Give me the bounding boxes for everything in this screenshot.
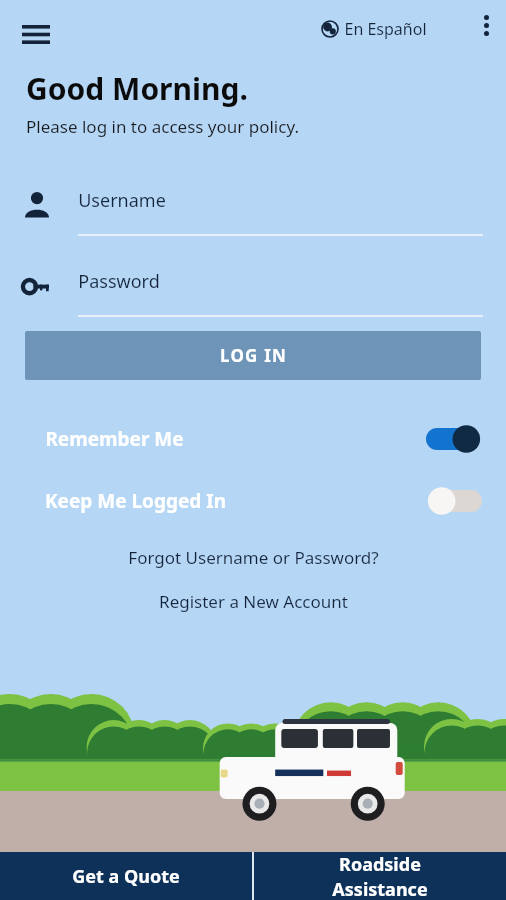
staticText: Roadside	[339, 852, 421, 877]
staticText: Username	[78, 188, 166, 213]
staticText: Password	[78, 269, 160, 294]
staticText: Get a Quote	[72, 864, 180, 889]
button[interactable]: Keep Me Logged In	[45, 477, 482, 525]
button[interactable]: Get a Quote	[0, 852, 252, 900]
button[interactable]: Remember Me	[45, 415, 482, 463]
staticText: LOG IN	[220, 344, 287, 367]
staticText: Register a New Account	[159, 590, 348, 613]
staticText: Assistance	[332, 877, 428, 900]
staticText: Good Morning.	[26, 68, 248, 109]
button[interactable]: Username	[78, 184, 483, 236]
button[interactable]: Register a New Account	[0, 585, 506, 617]
staticText: Please log in to access your policy.	[26, 115, 299, 138]
button[interactable]: En Español	[322, 18, 427, 40]
staticText: Forgot Username or Password?	[128, 546, 379, 569]
button[interactable]: Menu	[14, 12, 58, 56]
button[interactable]: LOG IN	[25, 331, 481, 380]
staticText: Remember Me	[45, 426, 184, 452]
button[interactable]: Roadside	[254, 852, 506, 900]
staticText: En Español	[344, 18, 427, 40]
button[interactable]: Forgot Username or Password?	[0, 541, 506, 573]
button[interactable]: More options	[466, 5, 506, 45]
button[interactable]: Password	[78, 265, 483, 317]
staticText: Keep Me Logged In	[45, 488, 226, 514]
